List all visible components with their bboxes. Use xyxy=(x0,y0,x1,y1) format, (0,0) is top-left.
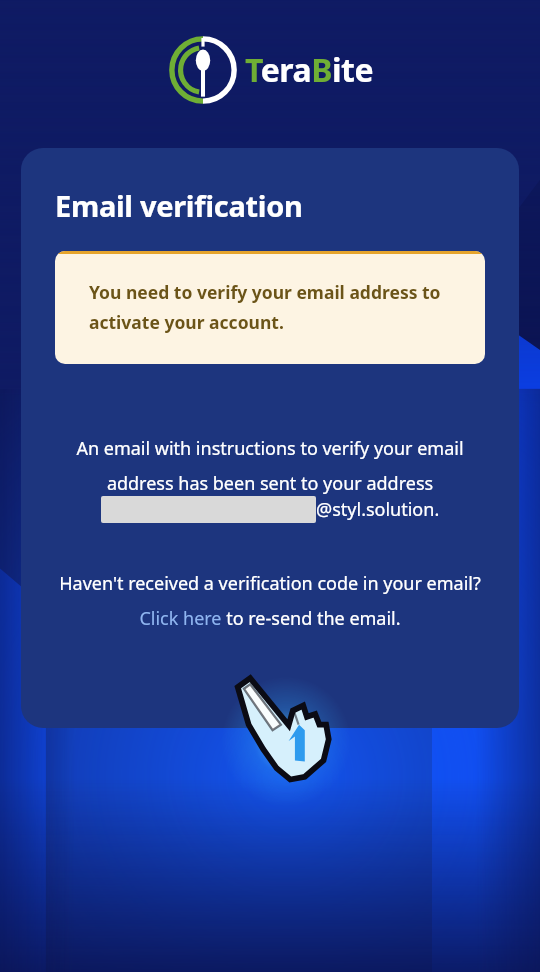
staticText: Haven't received a verification code in … xyxy=(47,571,493,631)
button[interactable]: Haven't received a verification code in … xyxy=(47,571,493,631)
staticText: @styl.solution. xyxy=(316,497,440,522)
staticText: An email with instructions to verify you… xyxy=(51,436,489,496)
other: Click here pointer xyxy=(232,672,336,784)
staticText: You need to verify your email address to… xyxy=(89,280,463,334)
staticText: Email verification xyxy=(55,186,303,225)
staticText: TeraBite xyxy=(245,48,374,92)
